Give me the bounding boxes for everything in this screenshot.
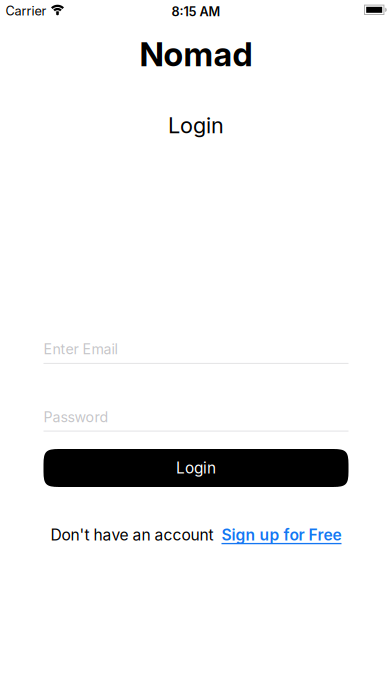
staticText: 8:15 AM bbox=[171, 4, 220, 19]
staticText: Carrier bbox=[5, 3, 46, 19]
staticText: Login bbox=[176, 459, 216, 477]
staticText: Sign up for Free bbox=[221, 525, 341, 544]
button[interactable]: Sign up for Free bbox=[221, 525, 341, 544]
staticText: Login bbox=[168, 112, 224, 138]
staticText: Nomad bbox=[139, 34, 252, 74]
button[interactable]: Login bbox=[43, 449, 348, 487]
staticText: Don't have an account bbox=[50, 525, 213, 544]
staticText: Enter Email bbox=[43, 340, 117, 358]
staticText: Password bbox=[43, 408, 108, 426]
